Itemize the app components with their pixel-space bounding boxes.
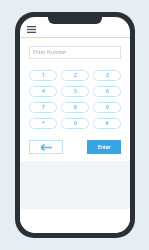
button[interactable]: 9: [93, 102, 121, 113]
button[interactable]: 4: [29, 86, 57, 97]
staticText: Enter Number: [33, 49, 67, 56]
staticText: 2: [74, 72, 77, 79]
staticText: #: [105, 120, 109, 127]
button[interactable]: #: [93, 118, 121, 129]
staticText: *: [42, 120, 45, 127]
button[interactable]: 6: [93, 86, 121, 97]
staticText: 7: [42, 104, 45, 111]
staticText: 0: [74, 120, 77, 127]
button[interactable]: 7: [29, 102, 57, 113]
button[interactable]: 5: [61, 86, 89, 97]
button[interactable]: 0: [61, 118, 89, 129]
button[interactable]: 2: [61, 70, 89, 81]
staticText: 5: [74, 88, 77, 95]
staticText: 1: [42, 72, 45, 79]
staticText: 6: [106, 88, 109, 95]
button[interactable]: Menu: [27, 26, 36, 33]
button[interactable]: *: [29, 118, 57, 129]
staticText: Enter: [98, 144, 111, 151]
button[interactable]: Backspace: [29, 140, 63, 154]
staticText: 4: [42, 88, 45, 95]
button[interactable]: 3: [93, 70, 121, 81]
staticText: 3: [106, 72, 109, 79]
staticText: 9: [106, 104, 109, 111]
button[interactable]: Enter Number: [29, 46, 121, 59]
button[interactable]: 1: [29, 70, 57, 81]
staticText: 8: [74, 104, 77, 111]
button[interactable]: 8: [61, 102, 89, 113]
button[interactable]: Enter: [87, 140, 121, 154]
